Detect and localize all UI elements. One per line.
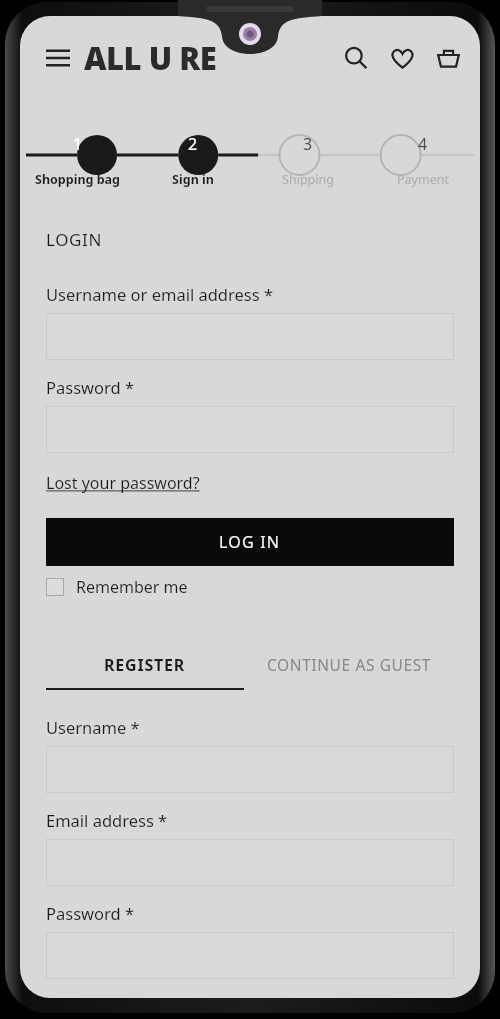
staticText: Password * bbox=[46, 902, 135, 924]
button[interactable] bbox=[46, 839, 454, 886]
button[interactable]: REGISTER bbox=[46, 654, 244, 690]
button[interactable]: CONTINUE AS GUEST bbox=[244, 654, 454, 675]
staticText: Payment bbox=[397, 171, 449, 188]
button[interactable] bbox=[46, 746, 454, 793]
button[interactable]: Remember me bbox=[46, 572, 188, 602]
staticText: 4 bbox=[418, 133, 428, 155]
button[interactable] bbox=[46, 313, 454, 360]
staticText: CONTINUE AS GUEST bbox=[267, 654, 432, 675]
button[interactable]: Search bbox=[336, 38, 376, 78]
staticText: Email address * bbox=[46, 809, 168, 831]
button[interactable] bbox=[46, 932, 454, 979]
staticText: Lost your password? bbox=[46, 472, 200, 494]
button[interactable]: Shopping bag bbox=[428, 38, 468, 78]
staticText: LOG IN bbox=[219, 531, 281, 553]
staticText: Sign in bbox=[172, 171, 214, 188]
staticText: LOGIN bbox=[46, 228, 102, 251]
staticText: Username or email address * bbox=[46, 283, 273, 305]
staticText: 2 bbox=[188, 133, 198, 155]
staticText: Password * bbox=[46, 376, 135, 398]
button[interactable]: Lost your password? bbox=[46, 472, 200, 494]
button[interactable] bbox=[46, 406, 454, 453]
button[interactable]: 3 bbox=[250, 124, 365, 190]
button[interactable]: 2 bbox=[135, 124, 250, 190]
staticText: Remember me bbox=[76, 576, 188, 598]
staticText: ALL U RE bbox=[84, 37, 217, 79]
staticText: Shopping bag bbox=[35, 171, 120, 188]
button[interactable]: Menu bbox=[40, 40, 76, 76]
button[interactable]: Wishlist bbox=[382, 38, 422, 78]
staticText: 3 bbox=[303, 133, 313, 155]
staticText: Shipping bbox=[282, 171, 334, 188]
staticText: 1 bbox=[73, 133, 83, 155]
button[interactable]: 4 bbox=[365, 124, 480, 190]
button[interactable]: LOG IN bbox=[46, 518, 454, 566]
button[interactable]: 1 bbox=[20, 124, 135, 190]
staticText: Username * bbox=[46, 716, 140, 738]
staticText: REGISTER bbox=[104, 654, 186, 676]
